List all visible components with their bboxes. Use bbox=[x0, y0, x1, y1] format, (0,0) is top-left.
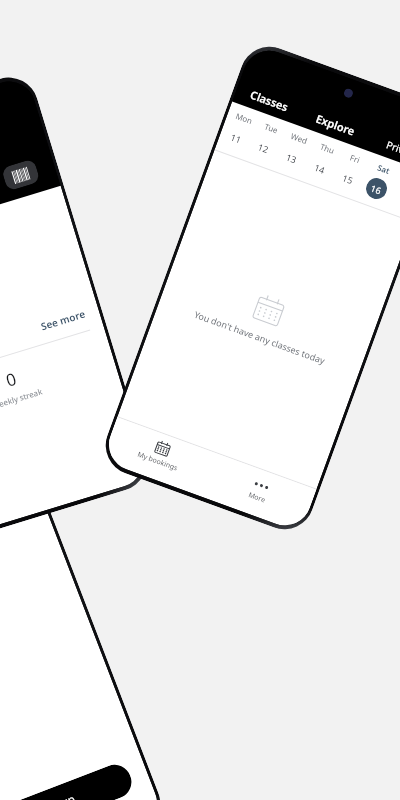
staticText: 16 bbox=[369, 181, 383, 196]
staticText: Wed bbox=[289, 130, 309, 146]
button[interactable]: More bbox=[203, 453, 316, 527]
button[interactable]: Wed bbox=[274, 128, 315, 173]
button[interactable]: Private bbox=[365, 127, 400, 172]
staticText: My bookings bbox=[136, 450, 180, 474]
button[interactable]: Explore bbox=[299, 102, 373, 148]
button[interactable]: Sun bbox=[387, 169, 400, 214]
button[interactable]: Sign up bbox=[0, 760, 136, 800]
staticText: See more bbox=[39, 306, 87, 333]
staticText: More bbox=[247, 490, 267, 506]
button[interactable]: Scan barcode bbox=[1, 158, 40, 191]
staticText: Mon bbox=[234, 110, 254, 126]
staticText: 13 bbox=[285, 151, 299, 166]
button[interactable]: Sat bbox=[358, 158, 399, 203]
staticText: Sign up bbox=[35, 791, 77, 800]
button[interactable]: Tue bbox=[246, 118, 286, 162]
button[interactable]: Thu bbox=[302, 138, 343, 183]
staticText: Explore bbox=[314, 111, 358, 139]
staticText: 15 bbox=[341, 171, 355, 186]
button[interactable]: See more bbox=[0, 306, 87, 372]
staticText: Weekly streak bbox=[0, 385, 43, 411]
staticText: Fri bbox=[348, 151, 362, 165]
staticText: You don't have any classes today bbox=[192, 308, 327, 366]
button[interactable]: My bookings bbox=[103, 417, 217, 491]
staticText: Thu bbox=[318, 141, 336, 156]
staticText: 11 bbox=[229, 130, 243, 145]
button[interactable]: Fri bbox=[330, 148, 371, 193]
staticText: Tue bbox=[263, 120, 280, 135]
staticText: 14 bbox=[313, 161, 327, 176]
staticText: Classes bbox=[248, 87, 291, 115]
staticText: 12 bbox=[256, 140, 271, 155]
button[interactable]: Classes bbox=[233, 78, 306, 123]
button[interactable]: Mon bbox=[219, 108, 259, 152]
staticText: Private bbox=[384, 137, 400, 162]
staticText: Sat bbox=[376, 161, 392, 176]
staticText: 0 bbox=[3, 367, 19, 392]
